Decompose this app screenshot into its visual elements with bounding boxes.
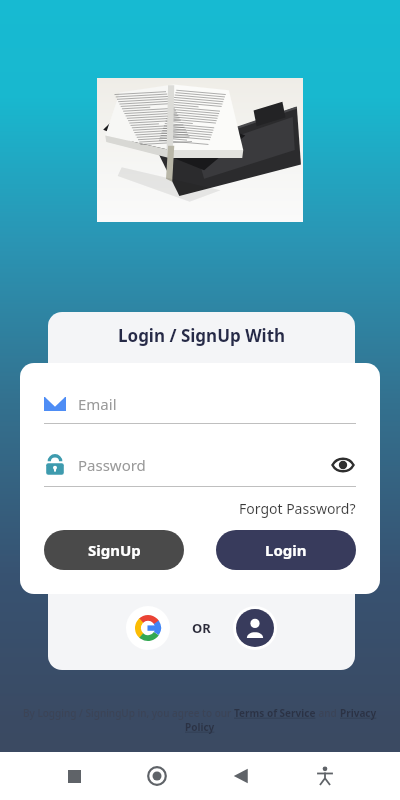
button[interactable]: Privacy [340, 706, 377, 720]
staticText: By Logging / SigningUp in, you agree to … [23, 706, 234, 720]
button[interactable]: Email [44, 393, 356, 415]
button[interactable]: Home [137, 756, 177, 796]
button[interactable]: Login [216, 530, 356, 570]
staticText: SignUp [88, 540, 141, 560]
staticText: OR [192, 619, 211, 637]
button[interactable]: Continue as guest [233, 606, 277, 650]
button[interactable]: SignUp [44, 530, 184, 570]
button[interactable]: Policy [185, 720, 215, 734]
button[interactable]: Accessibility [305, 756, 345, 796]
button[interactable]: Show password [330, 452, 356, 478]
button[interactable]: Password [44, 452, 356, 478]
staticText: Login / SignUp With [118, 324, 286, 347]
staticText: Email [78, 394, 117, 414]
button[interactable]: Back [221, 756, 261, 796]
staticText: Login [265, 540, 307, 560]
button[interactable]: Recent apps [54, 756, 94, 796]
button[interactable]: Forgot Password? [239, 499, 356, 518]
button[interactable]: Terms of Service [234, 706, 316, 720]
button[interactable]: Sign in with Google [126, 606, 170, 650]
staticText: and [316, 706, 340, 720]
staticText: Password [78, 455, 330, 475]
